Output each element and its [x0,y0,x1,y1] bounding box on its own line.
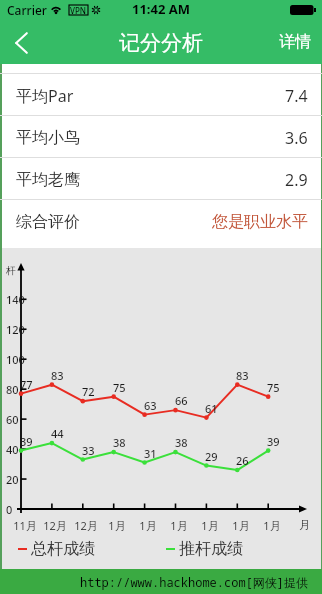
staticText: 83 [236,368,249,383]
staticText: 38 [113,435,126,450]
staticText: 26 [236,453,249,468]
staticText: 39 [267,434,280,449]
staticText: 12月 [71,518,101,533]
button[interactable]: Back [0,21,42,65]
button[interactable]: 综合评价 [0,200,322,241]
staticText: 平均Par [16,85,74,107]
staticText: 100 [6,352,25,367]
staticText: 平均小鸟 [16,128,80,148]
staticText: 7.4 [285,85,308,107]
staticText: 1月 [133,518,163,533]
staticText: 120 [6,322,25,337]
staticText: 总杆成绩 [31,539,95,559]
staticText: 11月 [10,518,40,533]
staticText: 63 [144,398,157,413]
staticText: 140 [6,292,25,307]
staticText: 60 [6,412,19,427]
staticText: 1月 [195,518,225,533]
staticText: 11:42 AM [132,0,191,18]
button[interactable]: 详情 [279,20,311,64]
staticText: 推杆成绩 [179,539,243,559]
staticText: 平均老鹰 [16,170,80,190]
staticText: 40 [6,442,19,457]
staticText: 2.9 [285,169,308,191]
staticText: 66 [175,393,188,408]
staticText: 33 [82,443,95,458]
staticText: 83 [51,368,64,383]
staticText: 80 [6,382,19,397]
button[interactable]: 平均老鹰 [0,158,322,199]
staticText: 38 [175,435,188,450]
staticText: 1月 [102,518,132,533]
staticText: Carrier [7,2,47,18]
staticText: 月 [299,518,310,532]
staticText: 20 [6,472,19,487]
staticText: 75 [267,380,280,395]
staticText: 记分分析 [119,30,203,56]
staticText: 详情 [279,32,311,52]
staticText: 杆 [6,264,16,277]
staticText: 77 [20,377,33,392]
staticText: 综合评价 [16,212,80,232]
staticText: 29 [205,449,218,464]
staticText: 61 [205,401,218,416]
staticText: 1月 [257,518,287,533]
button[interactable]: 平均小鸟 [0,116,322,157]
staticText: 39 [20,434,33,449]
staticText: 75 [113,380,126,395]
staticText: 3.6 [285,127,308,149]
staticText: 0 [6,502,13,517]
button[interactable]: 平均Par [0,74,322,115]
staticText: VPN [70,5,87,15]
staticText: 44 [51,426,64,441]
staticText: 1月 [226,518,256,533]
staticText: http://www.hackhome.com[网侠]提供 [80,574,309,590]
staticText: 12月 [40,518,70,533]
staticText: 您是职业水平 [212,212,308,232]
staticText: 72 [82,384,95,399]
staticText: 1月 [164,518,194,533]
staticText: 31 [144,446,157,461]
